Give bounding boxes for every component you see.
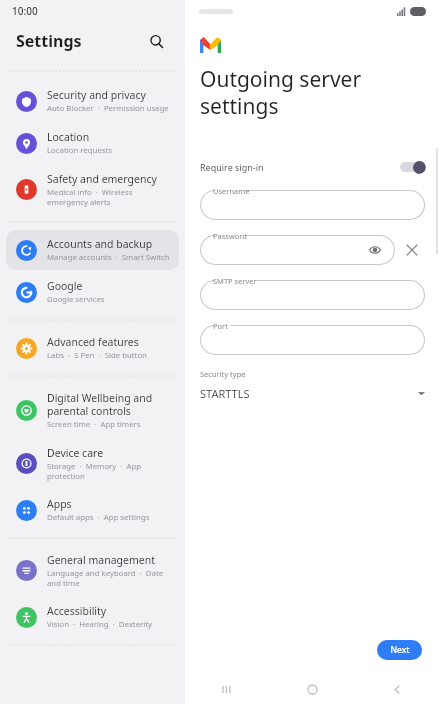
staticText: Device care xyxy=(47,446,104,460)
button[interactable]: Show password xyxy=(367,242,383,258)
staticText: Auto Blocker · Permission usage xyxy=(47,103,169,114)
staticText: Password xyxy=(213,231,247,241)
button[interactable]: Username xyxy=(200,190,425,220)
staticText: SMTP server xyxy=(213,276,257,286)
button[interactable]: Next xyxy=(377,640,422,660)
button[interactable]: Home xyxy=(270,674,355,704)
button[interactable]: Security type xyxy=(200,369,426,401)
staticText: Vision · Hearing · Dexterity xyxy=(47,619,153,630)
staticText: Username xyxy=(213,186,250,196)
staticText: Security and privacy xyxy=(47,88,146,102)
staticText: Screen time · App timers xyxy=(47,419,141,430)
staticText: Accounts and backup xyxy=(47,237,153,251)
staticText: Labs · S Pen · Side button xyxy=(47,350,147,361)
button[interactable]: Clear password xyxy=(403,241,421,259)
staticText: Manage accounts · Smart Switch xyxy=(47,252,170,263)
staticText: Medical info · Wireless emergency alerts xyxy=(47,187,171,207)
button[interactable]: Port xyxy=(200,325,425,355)
button[interactable]: Apps xyxy=(6,490,179,530)
button[interactable]: Accessibility xyxy=(6,597,179,637)
staticText: Location xyxy=(47,130,90,144)
button[interactable]: Security and privacy xyxy=(6,81,179,121)
button[interactable]: Require sign-in toggle xyxy=(400,160,426,174)
staticText: Location requests xyxy=(47,145,113,156)
staticText: Google services xyxy=(47,294,105,305)
staticText: Language and keyboard · Date and time xyxy=(47,568,171,588)
button[interactable]: Back xyxy=(355,674,440,704)
staticText: STARTTLS xyxy=(200,386,250,401)
button[interactable]: Password xyxy=(200,235,395,265)
staticText: Port xyxy=(213,321,228,331)
staticText: General management xyxy=(47,553,155,567)
button[interactable]: Require sign-in xyxy=(185,158,440,176)
staticText: Safety and emergency xyxy=(47,172,157,186)
button[interactable]: Digital Wellbeing and parental controls xyxy=(6,384,179,437)
button[interactable]: Advanced features xyxy=(6,328,179,368)
staticText: Security type xyxy=(200,369,246,379)
staticText: Advanced features xyxy=(47,335,139,349)
staticText: Require sign-in xyxy=(200,161,264,173)
button[interactable]: Device care xyxy=(6,439,179,488)
staticText: Apps xyxy=(47,497,72,511)
staticText: 10:00 xyxy=(12,4,38,18)
staticText: Next xyxy=(390,644,410,656)
button[interactable]: Recent apps xyxy=(185,674,270,704)
staticText: Outgoing server settings xyxy=(200,65,362,120)
button[interactable]: General management xyxy=(6,546,179,595)
button[interactable]: SMTP server xyxy=(200,280,425,310)
staticText: Storage · Memory · App protection xyxy=(47,461,171,481)
staticText: Google xyxy=(47,279,83,293)
staticText: Default apps · App settings xyxy=(47,512,150,523)
button[interactable]: Location xyxy=(6,123,179,163)
staticText: Accessibility xyxy=(47,604,107,618)
button[interactable]: Google xyxy=(6,272,179,312)
staticText: Settings xyxy=(16,30,82,52)
button[interactable]: Safety and emergency xyxy=(6,165,179,214)
staticText: Digital Wellbeing and parental controls xyxy=(47,391,171,418)
button[interactable]: Accounts and backup xyxy=(6,230,179,270)
button[interactable]: Search settings xyxy=(143,28,169,54)
